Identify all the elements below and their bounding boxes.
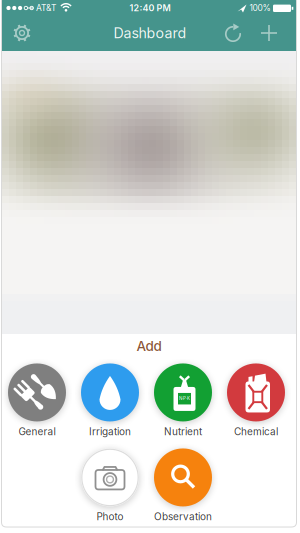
staticText: Photo	[96, 510, 123, 523]
staticText: 12:40 PM	[129, 3, 170, 13]
staticText: Chemical	[234, 425, 278, 438]
button[interactable]: Observation	[154, 448, 212, 523]
staticText: N·P·K	[179, 396, 190, 401]
button[interactable]: Settings	[5, 16, 39, 50]
staticText: Add	[136, 338, 161, 354]
staticText: Irrigation	[89, 425, 131, 438]
staticText: General	[18, 425, 55, 438]
button[interactable]: Refresh	[216, 16, 250, 50]
staticText: Nutrient	[164, 425, 202, 438]
button[interactable]: General	[8, 363, 66, 438]
button[interactable]: N·P·K	[154, 363, 212, 438]
button[interactable]: Add	[252, 16, 286, 50]
staticText: Dashboard	[113, 24, 186, 42]
button[interactable]: Photo	[81, 448, 139, 523]
staticText: 100%	[249, 3, 270, 13]
staticText: Observation	[154, 510, 212, 523]
staticText: AT&T	[36, 3, 56, 13]
button[interactable]: Irrigation	[81, 363, 139, 438]
button[interactable]: Chemical	[227, 363, 285, 438]
